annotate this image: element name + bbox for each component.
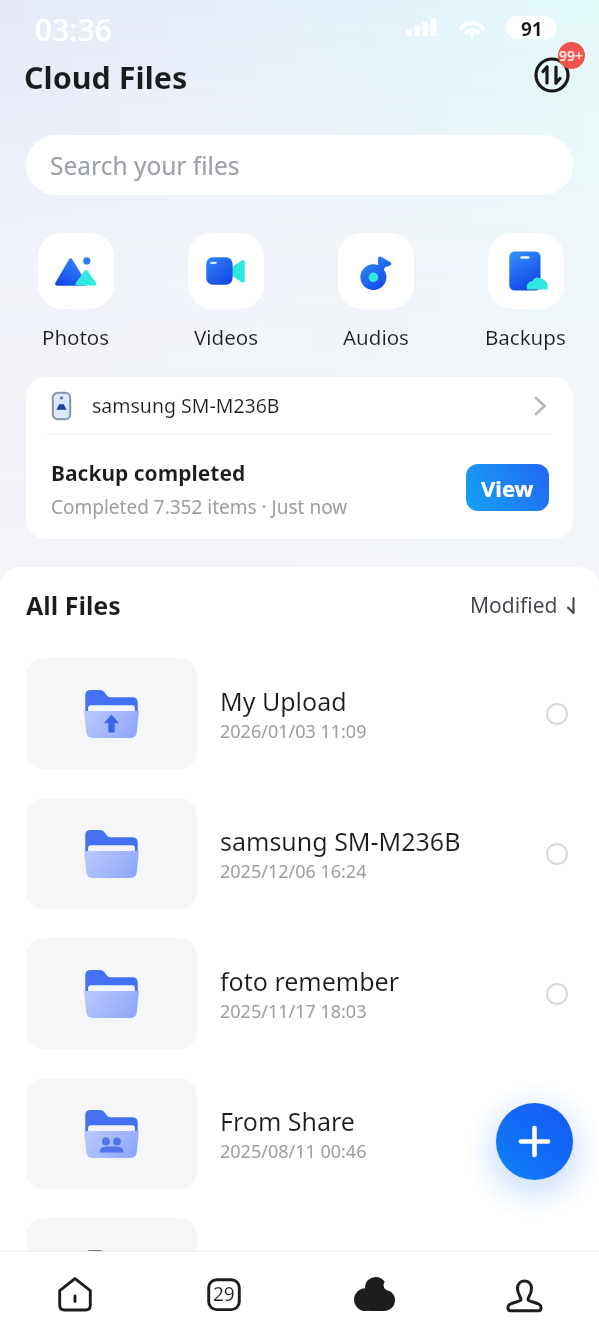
button[interactable]: Home [0, 1252, 149, 1335]
button[interactable]: Videos [168, 233, 283, 351]
button[interactable]: Select From Share [537, 1114, 577, 1154]
staticText: 03:36 [35, 9, 112, 50]
staticText: 2025/12/06 16:24 [220, 859, 367, 884]
staticText: Videos [194, 323, 258, 351]
staticText: 29 [213, 1281, 235, 1307]
staticText: Cloud Files [24, 56, 188, 98]
staticText: samsung SM-M236B [92, 392, 280, 419]
staticText: Audios [343, 323, 409, 351]
staticText: Completed 7.352 items · Just now [51, 494, 348, 520]
staticText: 2025/11/17 18:03 [220, 999, 367, 1024]
button[interactable]: Select My Upload [537, 694, 577, 734]
staticText: Backups [485, 323, 566, 351]
button[interactable]: Transfers [522, 41, 588, 99]
staticText: 91 [521, 16, 543, 39]
button[interactable]: Search your files [26, 135, 573, 195]
staticText: foto remember [220, 964, 399, 998]
button[interactable]: samsung SM-M236B [0, 798, 599, 909]
staticText: 2026/01/03 11:09 [220, 719, 367, 744]
staticText: Backup completed [51, 459, 246, 488]
button[interactable]: Profile [449, 1252, 599, 1335]
staticText: 2025/08/11 00:46 [220, 1139, 367, 1164]
staticText: All Files [26, 588, 121, 622]
button[interactable]: Select foto remember [537, 974, 577, 1014]
button[interactable]: View [466, 464, 549, 511]
button[interactable]: From Share [0, 1078, 599, 1189]
button[interactable]: Add [496, 1103, 573, 1180]
staticText: Photos [42, 323, 110, 351]
staticText: Search your files [50, 149, 240, 182]
staticText: Modified [470, 591, 558, 620]
staticText: samsung SM-M236B [220, 824, 461, 858]
button[interactable]: Temporary upload [0, 1218, 599, 1329]
staticText: View [481, 473, 534, 503]
button[interactable]: Calendar [149, 1252, 299, 1335]
button[interactable]: Audios [318, 233, 433, 351]
button[interactable]: foto remember [0, 938, 599, 1049]
button[interactable]: Photos [18, 233, 133, 351]
button[interactable]: Select samsung SM-M236B [537, 834, 577, 874]
staticText: From Share [220, 1104, 355, 1138]
button[interactable]: My Upload [0, 658, 599, 769]
staticText: 99+ [559, 46, 584, 65]
staticText: 2025/07/02 09:18 [220, 1279, 367, 1304]
button[interactable]: Backups [468, 233, 583, 351]
button[interactable]: Cloud storage [299, 1252, 449, 1335]
button[interactable]: samsung SM-M236B [26, 377, 573, 434]
staticText: Temporary upload [220, 1244, 436, 1278]
button[interactable]: Modified [470, 591, 580, 620]
staticText: My Upload [220, 684, 347, 718]
